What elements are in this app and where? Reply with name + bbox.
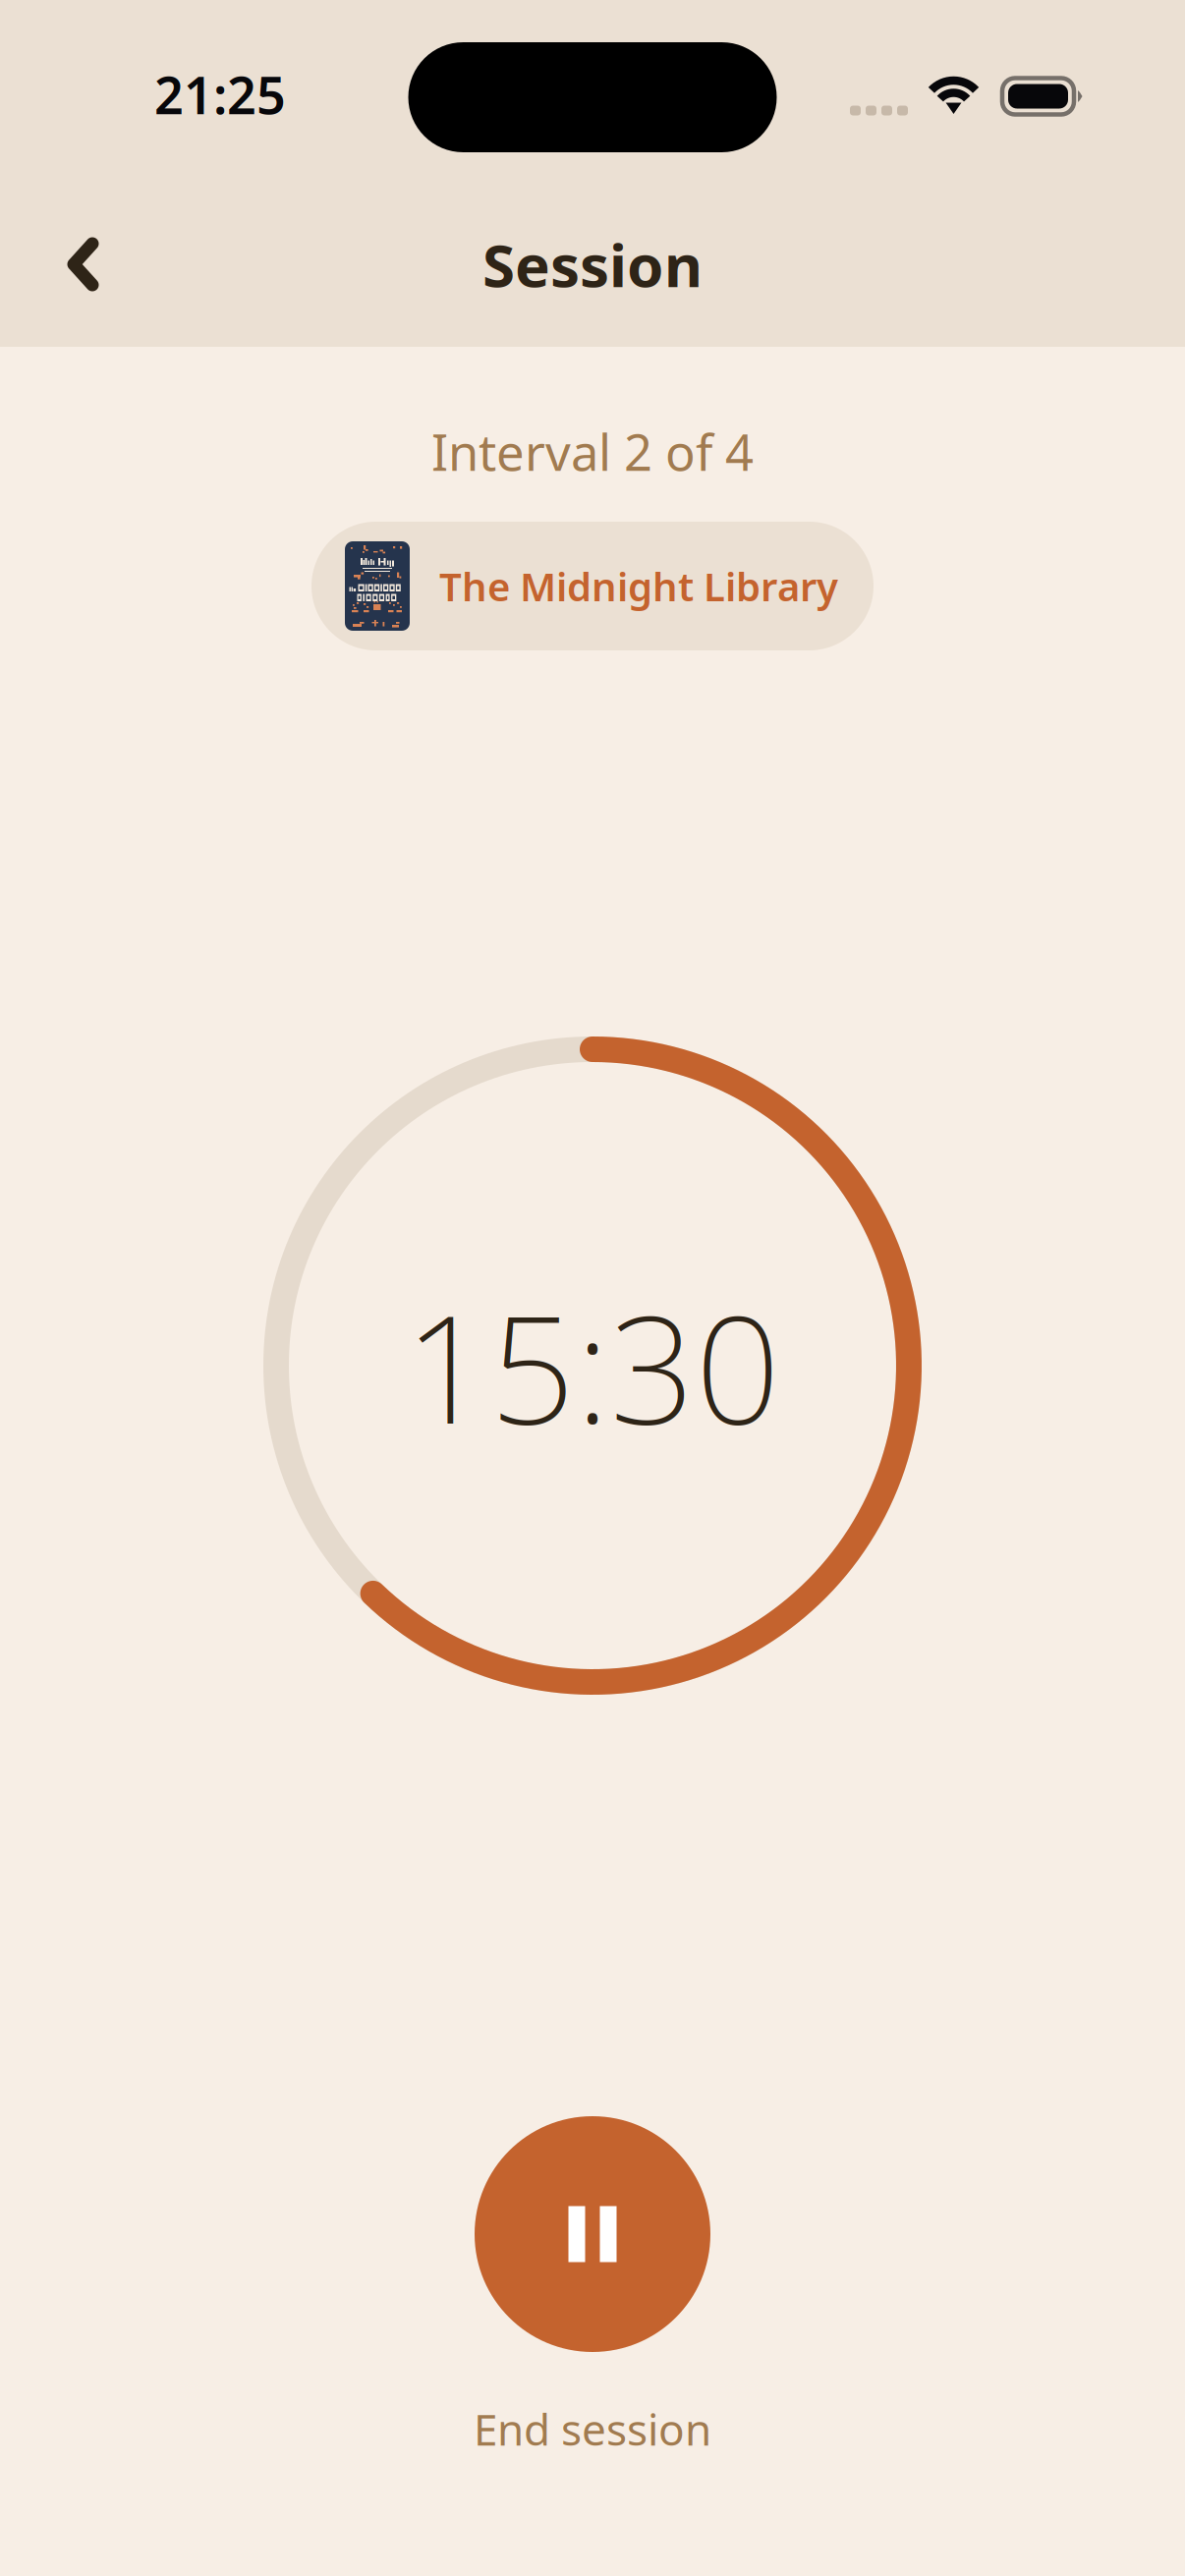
staticText: End session [474, 2400, 711, 2458]
button[interactable]: Back [44, 199, 154, 329]
staticText: Interval 2 of 4 [431, 419, 754, 485]
button[interactable]: The Midnight Library [311, 522, 874, 650]
button[interactable]: Pause [475, 2116, 710, 2352]
staticText: Session [482, 225, 703, 303]
staticText: The Midnight Library [439, 560, 838, 612]
staticText: 15:30 [404, 1266, 781, 1465]
staticText: 21:25 [154, 60, 286, 128]
button[interactable]: End session [434, 2388, 751, 2469]
